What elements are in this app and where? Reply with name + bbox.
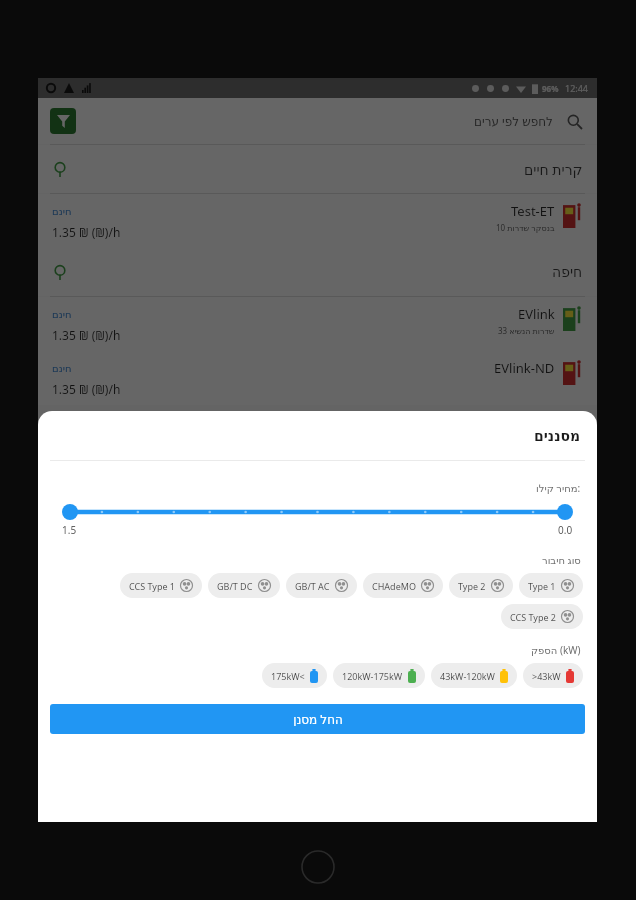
staticText: חינם — [52, 363, 72, 375]
button[interactable]: 43kW-120kW — [431, 663, 517, 688]
staticText: 0.0 — [558, 523, 573, 537]
button[interactable]: CHAdeMO — [363, 573, 443, 598]
staticText: חיפה — [552, 264, 583, 280]
staticText: 43kW-120kW — [440, 670, 495, 682]
staticText: החל מסנן — [293, 711, 343, 727]
staticText: מסננים — [534, 428, 581, 444]
staticText: הספק (kW) — [531, 643, 581, 657]
staticText: 1.35 ₪ (₪)/h — [52, 381, 121, 397]
button[interactable]: Filters — [50, 108, 76, 134]
button[interactable]: החל מסנן — [50, 704, 585, 734]
staticText: GB/T DC — [217, 580, 253, 592]
staticText: 96% — [542, 83, 559, 94]
staticText: GB/T AC — [295, 580, 330, 592]
staticText: חינם — [52, 206, 72, 218]
button[interactable]: GB/T AC — [286, 573, 357, 598]
button[interactable]: GB/T DC — [208, 573, 280, 598]
staticText: 33 שדרות הנשיא — [498, 325, 555, 336]
button[interactable]: חיפה — [52, 248, 583, 296]
button[interactable]: CCS Type 1 — [120, 573, 202, 598]
button[interactable]: חינם — [38, 194, 597, 248]
button[interactable]: חינם — [38, 297, 597, 351]
staticText: 1.5 — [62, 523, 77, 537]
button[interactable]: חינם — [38, 351, 597, 405]
button[interactable]: >43kW — [523, 663, 583, 688]
staticText: מחיר קילו: — [536, 481, 581, 495]
staticText: 120kW-175kW — [342, 670, 403, 682]
staticText: CCS Type 2 — [510, 611, 556, 623]
staticText: CHAdeMO — [372, 580, 416, 592]
staticText: 175kW< — [271, 670, 305, 682]
staticText: EVlink-ND — [494, 359, 555, 377]
staticText: EVlink — [518, 305, 555, 323]
staticText: CCS Type 1 — [129, 580, 175, 592]
staticText: חינם — [52, 309, 72, 321]
button[interactable]: 120kW-175kW — [333, 663, 425, 688]
staticText: סוג חיבור — [542, 553, 581, 567]
staticText: קרית חיים — [524, 160, 583, 179]
staticText: Type 2 — [458, 580, 486, 592]
button[interactable]: CCS Type 2 — [501, 604, 583, 629]
button[interactable]: Type 2 — [449, 573, 513, 598]
staticText: 1.35 ₪ (₪)/h — [52, 224, 121, 240]
staticText: Test-ET — [511, 202, 555, 220]
button[interactable]: Search — [563, 110, 585, 132]
staticText: 1.35 ₪ (₪)/h — [52, 327, 121, 343]
staticText: >43kW — [532, 670, 561, 682]
staticText: לחפש לפי ערים — [474, 113, 553, 129]
staticText: 10 בנסקר שדרות — [496, 222, 555, 233]
button[interactable]: 175kW< — [262, 663, 327, 688]
button[interactable]: קרית חיים — [52, 145, 583, 193]
button[interactable]: Type 1 — [519, 573, 583, 598]
staticText: 12:44 — [565, 82, 589, 94]
staticText: Type 1 — [528, 580, 556, 592]
